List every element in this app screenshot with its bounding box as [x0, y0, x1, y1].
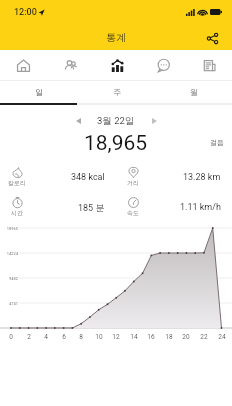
- button[interactable]: Share: [203, 29, 221, 47]
- staticText: 6: [58, 333, 70, 341]
- button[interactable]: 거리: [116, 162, 232, 192]
- staticText: 2: [23, 333, 35, 341]
- button[interactable]: Home: [0, 50, 47, 80]
- button[interactable]: Previous day: [70, 113, 86, 129]
- staticText: 걸음: [210, 138, 224, 147]
- staticText: 8: [75, 333, 87, 341]
- staticText: 348 kcal: [71, 172, 105, 183]
- button[interactable]: News: [186, 50, 232, 80]
- staticText: 185 분: [78, 202, 105, 213]
- button[interactable]: 속도: [116, 192, 232, 222]
- button[interactable]: 칼로리: [0, 162, 116, 192]
- staticText: 시간: [11, 209, 23, 217]
- staticText: 18965: [2, 226, 18, 231]
- staticText: 20: [180, 333, 192, 341]
- staticText: 18,965: [84, 131, 148, 153]
- staticText: 1.11 km/h: [180, 202, 221, 213]
- staticText: 4741: [2, 301, 18, 306]
- staticText: 일: [35, 87, 43, 97]
- staticText: 월: [190, 87, 198, 97]
- staticText: 12:00: [14, 7, 37, 18]
- button[interactable]: Friends: [47, 50, 94, 80]
- button[interactable]: Chat: [140, 50, 186, 80]
- button[interactable]: Statistics: [94, 50, 140, 80]
- staticText: 칼로리: [8, 179, 26, 187]
- staticText: 14224: [2, 251, 18, 256]
- staticText: 주: [113, 87, 121, 97]
- button[interactable]: 일: [0, 81, 78, 103]
- staticText: 14: [128, 333, 140, 341]
- staticText: 12: [110, 333, 122, 341]
- staticText: 22: [198, 333, 210, 341]
- staticText: 0: [5, 333, 17, 341]
- staticText: 24: [216, 333, 228, 341]
- button[interactable]: 월: [155, 81, 232, 103]
- staticText: 10: [93, 333, 105, 341]
- button[interactable]: Next day: [146, 113, 162, 129]
- staticText: 13.28 km: [183, 172, 221, 183]
- button[interactable]: 주: [78, 81, 155, 103]
- staticText: 거리: [127, 179, 139, 187]
- staticText: 3월 22일: [97, 115, 135, 127]
- staticText: 16: [145, 333, 157, 341]
- staticText: 4: [40, 333, 52, 341]
- staticText: 속도: [127, 209, 139, 217]
- staticText: 9482: [2, 276, 18, 281]
- staticText: 통계: [106, 31, 126, 44]
- button[interactable]: 시간: [0, 192, 116, 222]
- staticText: 18: [163, 333, 175, 341]
